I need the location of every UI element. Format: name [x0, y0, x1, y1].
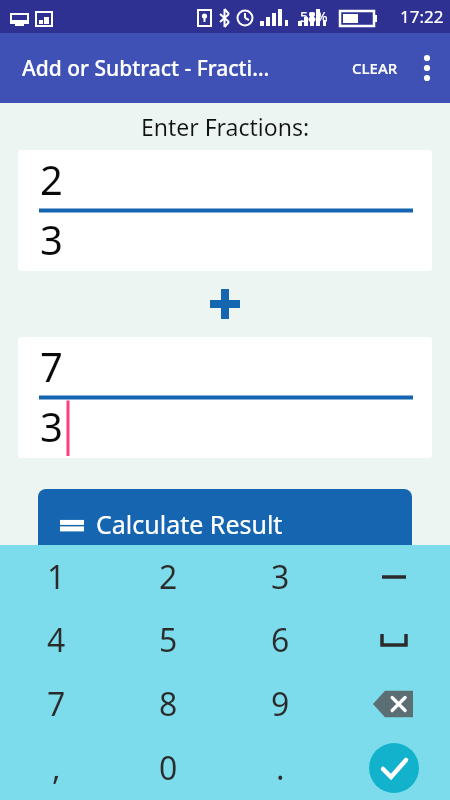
button[interactable]: Add: [207, 286, 243, 322]
staticText: 3: [271, 555, 290, 599]
button[interactable]: 4: [0, 608, 112, 672]
staticText: 17:22: [400, 5, 444, 28]
button[interactable]: Minus: [337, 545, 450, 608]
button[interactable]: 7: [0, 672, 112, 736]
other: Minus: [374, 557, 414, 597]
other: Backspace: [371, 681, 417, 727]
button[interactable]: 6: [224, 608, 337, 672]
button[interactable]: CLEAR: [346, 48, 404, 88]
button[interactable]: Calculate Result: [38, 489, 412, 559]
button[interactable]: .: [224, 736, 337, 800]
staticText: 58%: [300, 7, 328, 26]
staticText: 4: [47, 618, 66, 662]
staticText: 9: [271, 682, 290, 726]
button[interactable]: 1: [0, 545, 112, 608]
button[interactable]: 9: [224, 672, 337, 736]
staticText: 1: [47, 555, 66, 599]
staticText: 0: [159, 746, 178, 790]
button[interactable]: ,: [0, 736, 112, 800]
button[interactable]: Backspace: [337, 672, 450, 736]
staticText: .: [276, 746, 285, 790]
other: Space: [372, 618, 416, 662]
button[interactable]: More options: [410, 40, 450, 96]
staticText: ,: [52, 746, 61, 790]
button[interactable]: Done: [337, 736, 450, 800]
staticText: 3: [40, 399, 63, 453]
button[interactable]: 8: [112, 672, 224, 736]
staticText: Add or Subtract - Fracti…: [22, 54, 270, 83]
staticText: 2: [40, 152, 63, 206]
button[interactable]: 7: [18, 337, 432, 458]
button[interactable]: 2: [112, 545, 224, 608]
staticText: CLEAR: [352, 58, 398, 78]
button[interactable]: 5: [112, 608, 224, 672]
staticText: 2: [159, 555, 178, 599]
button[interactable]: 0: [112, 736, 224, 800]
staticText: 3: [40, 212, 63, 266]
staticText: 7: [47, 682, 66, 726]
staticText: 8: [159, 682, 178, 726]
staticText: 5: [159, 618, 178, 662]
staticText: 7: [40, 339, 63, 393]
button[interactable]: 3: [224, 545, 337, 608]
staticText: Calculate Result: [96, 507, 283, 541]
other: Done: [369, 743, 419, 793]
button[interactable]: 2: [18, 150, 432, 271]
staticText: 6: [271, 618, 290, 662]
button[interactable]: Space: [337, 608, 450, 672]
staticText: Enter Fractions:: [0, 111, 450, 142]
